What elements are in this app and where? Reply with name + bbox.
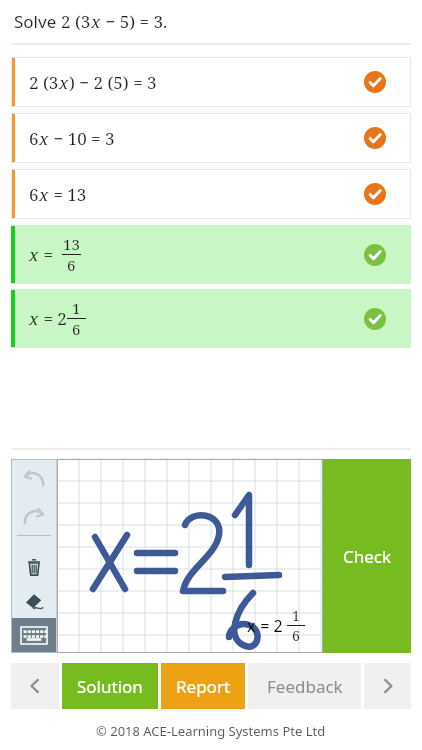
staticText: x [29, 307, 39, 330]
staticText: = 13 [49, 183, 87, 206]
staticText: 1 [292, 606, 300, 625]
button[interactable]: Previous [11, 663, 59, 709]
staticText: ) − 2 (5) = 3 [69, 71, 157, 94]
staticText: 6 [67, 255, 76, 275]
staticText: − 5) = 3. [101, 10, 168, 33]
button[interactable]: Redo [11, 497, 57, 535]
staticText: 6 [29, 127, 39, 150]
button[interactable]: x [11, 225, 411, 284]
staticText: 2 (3 [61, 10, 91, 33]
staticText: 6 [292, 626, 300, 645]
staticText: x [247, 615, 256, 637]
staticText: Solution [77, 675, 143, 698]
button[interactable]: Keyboard [11, 618, 57, 653]
staticText: © 2018 ACE-Learning Systems Pte Ltd [96, 722, 326, 740]
staticText: 6 [29, 183, 39, 206]
button[interactable]: Check [323, 459, 411, 653]
button[interactable]: Report [161, 663, 245, 709]
staticText: x [39, 127, 49, 150]
button[interactable]: 6 [11, 113, 411, 163]
staticText: 1 [72, 298, 81, 318]
button[interactable]: 6 [11, 169, 411, 219]
staticText: x [39, 183, 49, 206]
staticText: − 10 = 3 [49, 127, 115, 150]
staticText: Feedback [267, 675, 343, 698]
staticText: = [39, 243, 62, 266]
button[interactable]: x [11, 289, 411, 348]
button[interactable]: Delete [11, 550, 57, 584]
staticText: x [29, 243, 39, 266]
staticText: Check [343, 545, 392, 568]
staticText: 6 [72, 319, 81, 339]
button[interactable]: 2 (3 [11, 57, 411, 107]
staticText: x [91, 10, 101, 33]
staticText: 2 (3 [29, 71, 59, 94]
button[interactable]: Solution [62, 663, 158, 709]
staticText: x [59, 71, 69, 94]
staticText: Report [176, 675, 231, 698]
button[interactable]: Undo [11, 459, 57, 497]
staticText: Solve [14, 10, 61, 33]
staticText: 13 [63, 234, 80, 254]
button[interactable]: Feedback [248, 663, 361, 709]
staticText: = 2 [256, 615, 287, 637]
button[interactable]: Eraser [11, 584, 57, 618]
staticText: = 2 [39, 307, 67, 330]
button[interactable]: Next [364, 663, 411, 709]
